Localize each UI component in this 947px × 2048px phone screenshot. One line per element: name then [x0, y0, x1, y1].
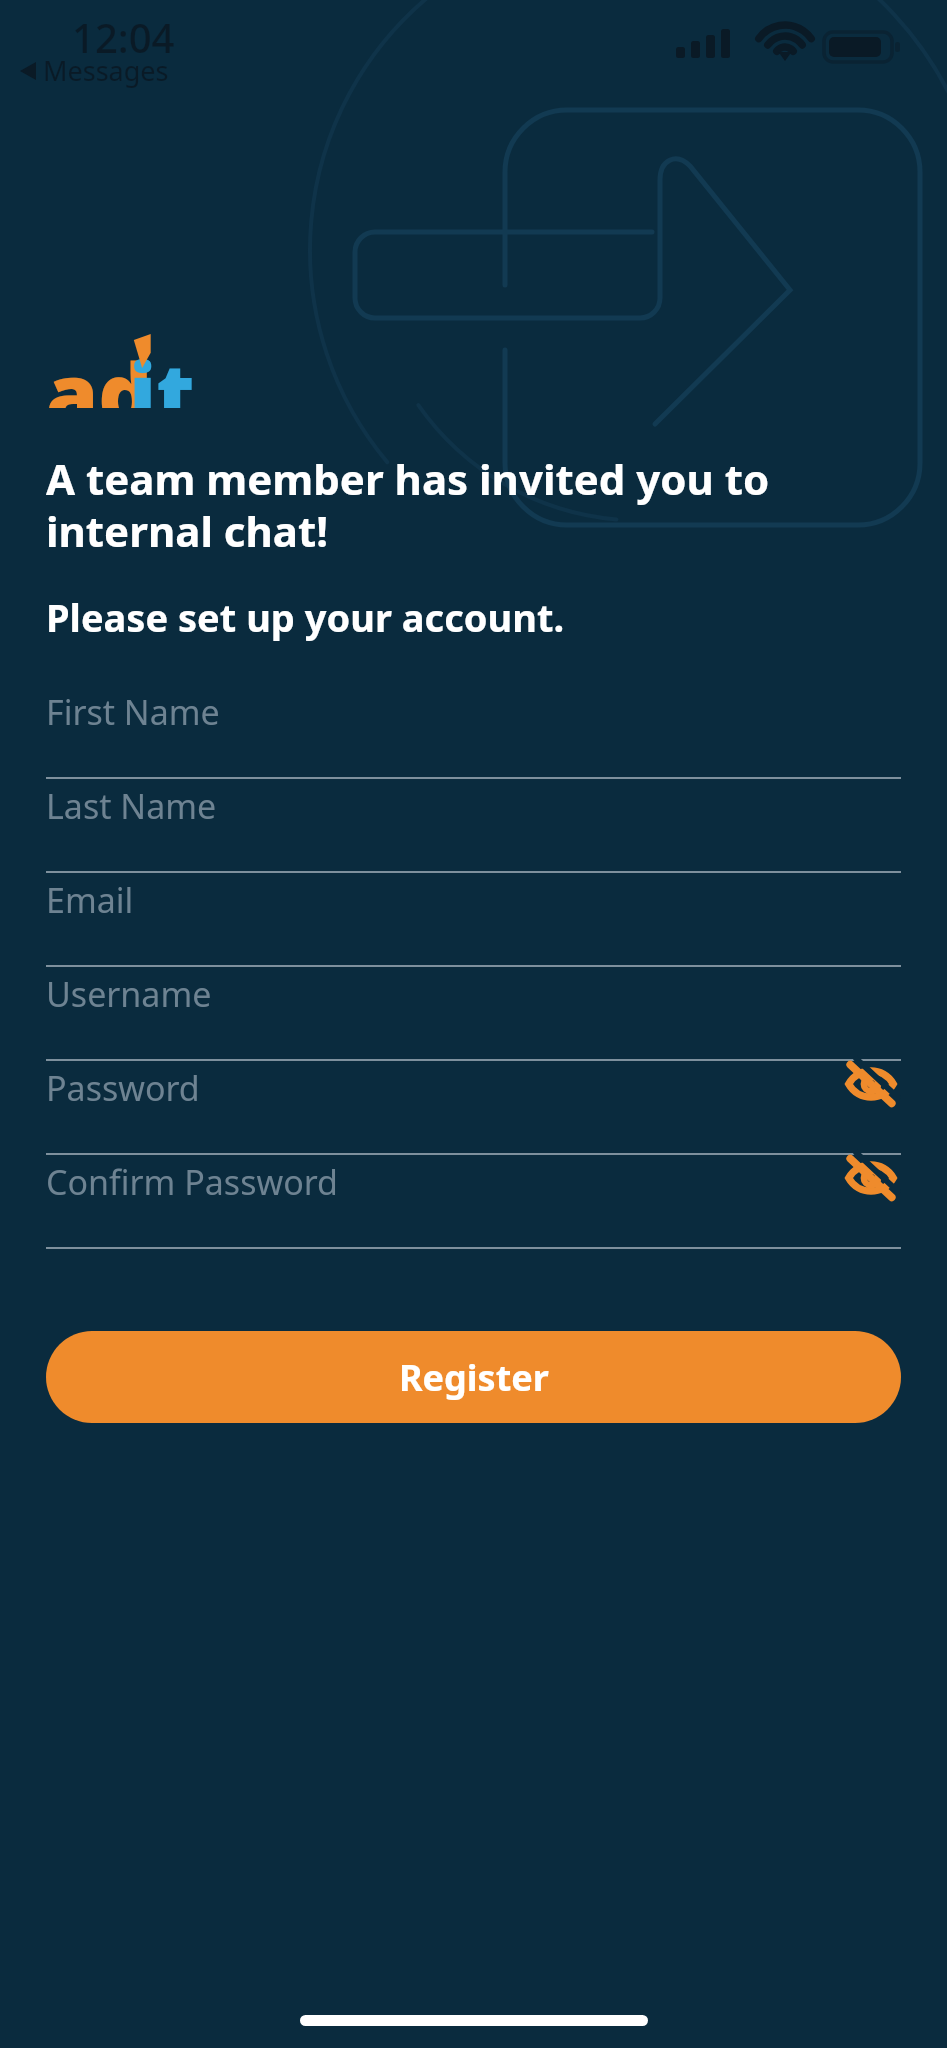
staticText: Register — [399, 1353, 549, 1402]
staticText: Messages — [43, 52, 169, 89]
staticText: Email — [46, 877, 134, 923]
button[interactable]: Username — [46, 967, 901, 1061]
button[interactable]: Last Name — [46, 779, 901, 873]
staticText: First Name — [46, 689, 220, 735]
staticText: A team member has invited you to interna… — [46, 450, 901, 559]
button[interactable]: Register — [46, 1331, 901, 1423]
staticText: 12:04 — [72, 10, 175, 64]
staticText: Please set up your account. — [46, 591, 565, 643]
staticText: it — [129, 334, 195, 408]
button[interactable]: Show password — [841, 1153, 901, 1203]
button[interactable]: Messages — [18, 50, 171, 91]
button[interactable]: Confirm Password — [46, 1155, 901, 1249]
button[interactable]: Password — [46, 1061, 901, 1155]
staticText: Username — [46, 971, 212, 1017]
button[interactable]: Email — [46, 873, 901, 967]
staticText: Password — [46, 1065, 200, 1111]
staticText: ad — [46, 334, 153, 408]
button[interactable]: Show password — [841, 1059, 901, 1109]
button[interactable]: First Name — [46, 685, 901, 779]
staticText: Confirm Password — [46, 1159, 338, 1205]
staticText: Last Name — [46, 783, 217, 829]
